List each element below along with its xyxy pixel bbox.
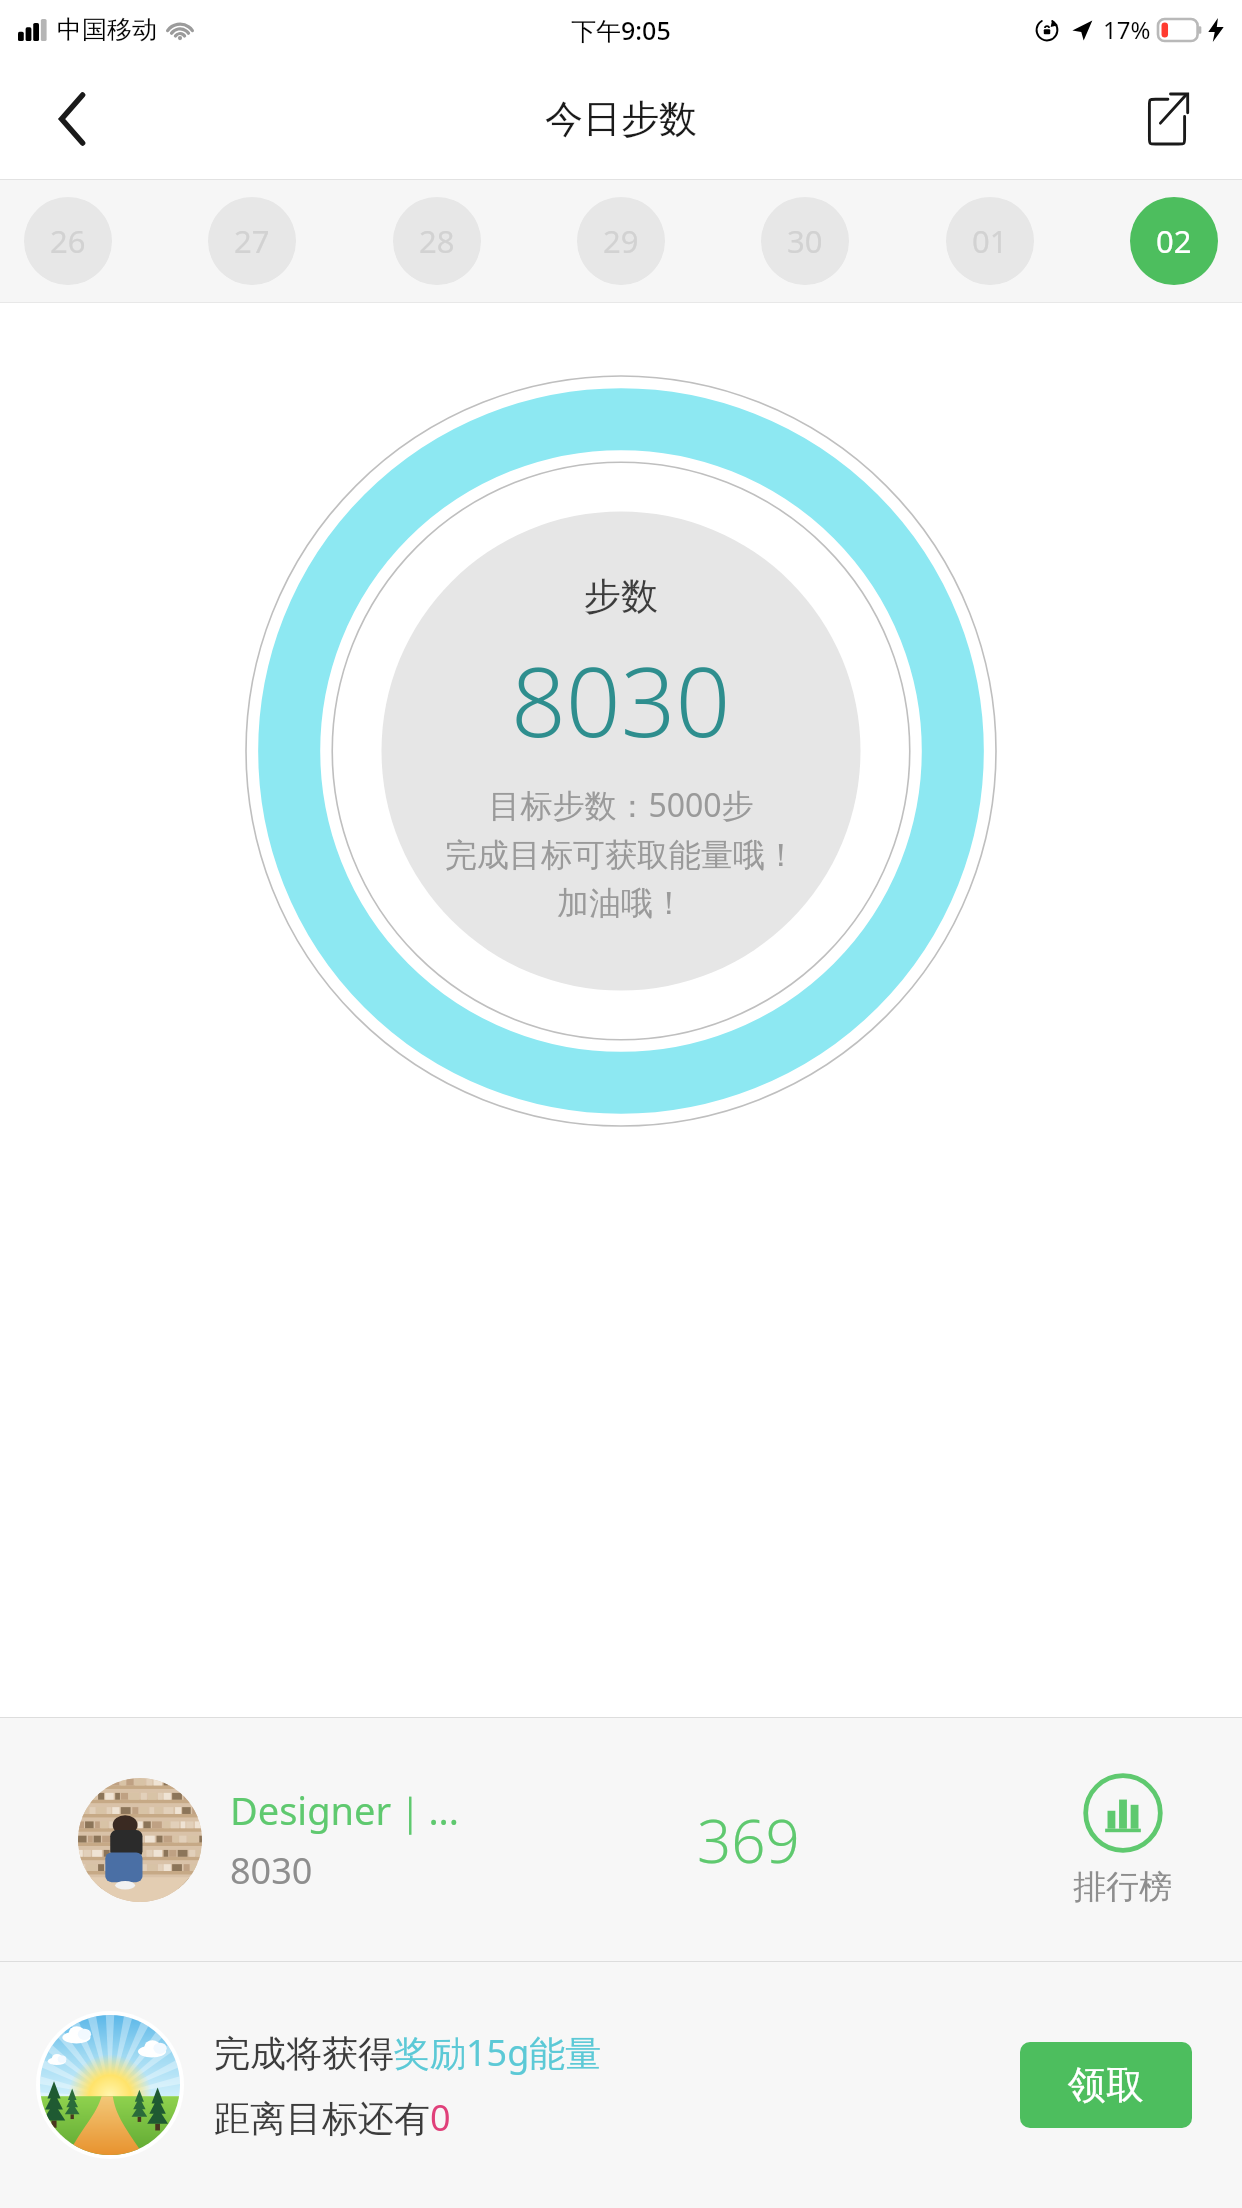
staticText: 369 <box>697 1799 800 1881</box>
staticText: 步数 <box>584 573 658 620</box>
staticText: 17% <box>1103 13 1151 46</box>
button[interactable]: 02 <box>1130 197 1218 285</box>
button[interactable]: Share <box>1132 84 1202 154</box>
staticText: 今日步数 <box>545 95 697 143</box>
button[interactable]: 30 <box>761 197 849 285</box>
button[interactable]: 领取 <box>1020 2042 1192 2128</box>
button[interactable]: 01 <box>946 197 1034 285</box>
staticText: 26 <box>50 220 86 262</box>
staticText: 距离目标还有0 <box>214 2093 451 2142</box>
staticText: 完成目标可获取能量哦！ <box>445 835 797 875</box>
staticText: 01 <box>972 220 1008 262</box>
button[interactable]: 29 <box>577 197 665 285</box>
staticText: 排行榜 <box>1073 1866 1172 1908</box>
staticText: 加油哦！ <box>557 883 685 923</box>
staticText: 中国移动 <box>57 14 157 45</box>
staticText: 目标步数：5000步 <box>488 783 754 827</box>
staticText: 28 <box>419 220 455 262</box>
staticText: 8030 <box>511 634 731 765</box>
staticText: 完成将获得奖励15g能量 <box>214 2028 602 2077</box>
button[interactable]: Designer｜... <box>0 1718 1242 1961</box>
button[interactable]: 27 <box>208 197 296 285</box>
staticText: 领取 <box>1068 2061 1144 2109</box>
button[interactable]: 排行榜 <box>1073 1772 1172 1908</box>
staticText: 02 <box>1156 220 1192 262</box>
button[interactable]: 28 <box>393 197 481 285</box>
button[interactable]: 26 <box>24 197 112 285</box>
staticText: 8030 <box>230 1846 313 1895</box>
staticText: 30 <box>787 220 823 262</box>
staticText: 29 <box>603 220 639 262</box>
staticText: Designer｜... <box>230 1784 459 1836</box>
staticText: 下午9:05 <box>571 13 671 47</box>
staticText: 27 <box>234 220 270 262</box>
button[interactable]: Back <box>36 82 110 156</box>
